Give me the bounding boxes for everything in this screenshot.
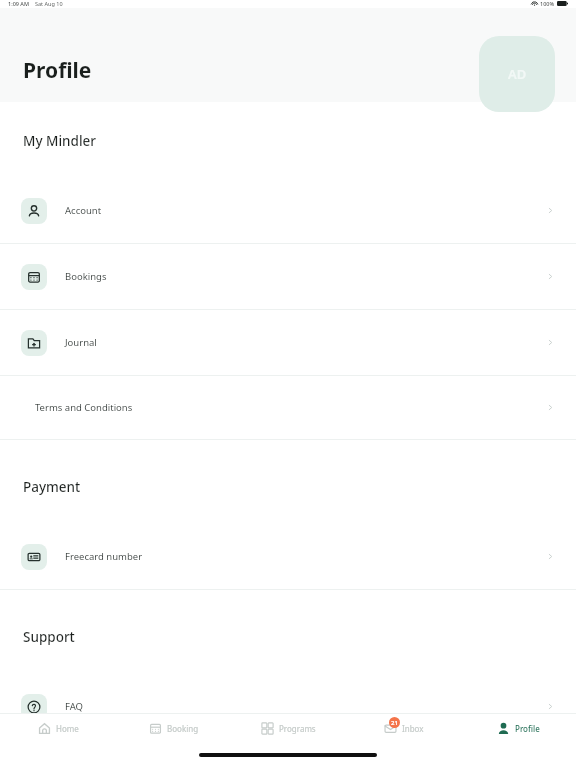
staticText: Home — [56, 723, 79, 734]
button[interactable]: Booking — [116, 714, 231, 742]
staticText: 100% — [540, 0, 555, 7]
button[interactable]: Freecard number — [0, 524, 576, 589]
button[interactable]: Home — [0, 714, 116, 742]
button[interactable]: Profile avatar AD — [479, 36, 555, 112]
button[interactable]: Profile — [461, 714, 576, 742]
staticText: 1:09 AM — [8, 0, 30, 7]
staticText: Sat Aug 10 — [35, 0, 63, 7]
staticText: AD — [508, 65, 527, 83]
staticText: Profile — [515, 723, 540, 734]
button[interactable]: FAQ — [0, 674, 576, 739]
staticText: Booking — [167, 723, 199, 734]
staticText: Inbox — [402, 723, 424, 734]
staticText: Bookings — [65, 270, 107, 283]
staticText: 21 — [391, 719, 398, 727]
staticText: Profile — [23, 56, 92, 85]
staticText: Terms and Conditions — [35, 401, 133, 414]
staticText: Account — [65, 204, 102, 217]
staticText: Journal — [65, 336, 97, 349]
button[interactable]: 21 — [346, 714, 461, 742]
button[interactable]: Account — [0, 178, 576, 243]
staticText: My Mindler — [23, 132, 97, 150]
button[interactable]: Bookings — [0, 244, 576, 309]
staticText: Programs — [279, 723, 316, 734]
staticText: FAQ — [65, 700, 84, 713]
button[interactable]: Programs — [231, 714, 346, 742]
button[interactable]: Journal — [0, 310, 576, 375]
button[interactable]: Terms and Conditions — [0, 376, 576, 439]
staticText: Payment — [23, 478, 81, 496]
staticText: Freecard number — [65, 550, 143, 563]
staticText: Support — [23, 628, 75, 646]
